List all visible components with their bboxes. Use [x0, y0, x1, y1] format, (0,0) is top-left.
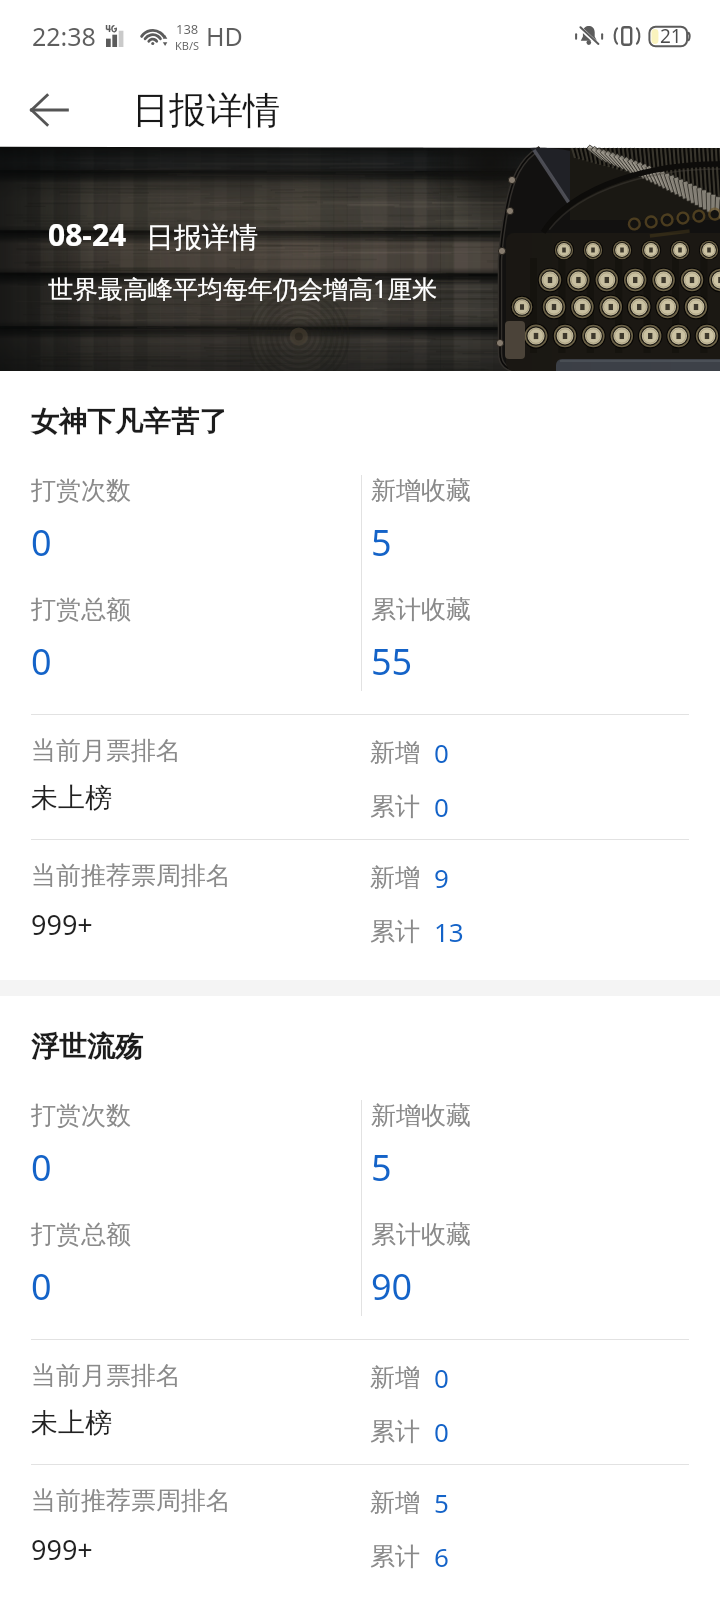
staticText: 新增收藏: [371, 1100, 471, 1131]
staticText: 世界最高峰平均每年仍会增高1厘米: [48, 271, 438, 305]
staticText: 累计: [370, 791, 420, 822]
staticText: 08-24: [48, 214, 127, 255]
staticText: 当前月票排名: [31, 1360, 181, 1391]
staticText: 日报详情: [146, 220, 258, 255]
staticText: 0: [31, 1143, 52, 1192]
staticText: 0: [434, 789, 449, 824]
staticText: 未上榜: [31, 1406, 112, 1440]
staticText: 0: [31, 518, 52, 567]
staticText: 999+: [31, 906, 93, 943]
button[interactable]: 当前推荐票周排名: [0, 1465, 720, 1589]
staticText: 6: [434, 1539, 449, 1574]
staticText: KB/S: [175, 38, 200, 53]
button[interactable]: 当前推荐票周排名: [0, 840, 720, 964]
staticText: 累计收藏: [371, 1219, 471, 1250]
staticText: 55: [371, 637, 413, 686]
staticText: 打赏次数: [31, 1100, 131, 1131]
staticText: 999+: [31, 1531, 93, 1568]
staticText: 0: [434, 735, 449, 770]
staticText: 新增: [370, 737, 420, 768]
staticText: 累计: [370, 1416, 420, 1447]
staticText: 当前推荐票周排名: [31, 1485, 231, 1516]
staticText: 90: [371, 1262, 413, 1311]
staticText: 日报详情: [132, 87, 280, 134]
staticText: 新增: [370, 1487, 420, 1518]
staticText: 当前推荐票周排名: [31, 860, 231, 891]
staticText: 当前月票排名: [31, 735, 181, 766]
staticText: 打赏总额: [31, 594, 131, 625]
staticText: 22:38: [32, 19, 96, 53]
staticText: 0: [31, 637, 52, 686]
staticText: 21: [660, 23, 682, 49]
staticText: 浮世流殇: [31, 1029, 143, 1064]
staticText: 女神下凡辛苦了: [31, 404, 227, 439]
staticText: 5: [371, 1143, 392, 1192]
staticText: HD: [206, 19, 243, 53]
staticText: 13: [434, 914, 464, 949]
button[interactable]: 当前月票排名: [0, 715, 720, 839]
button[interactable]: Back: [13, 74, 85, 146]
staticText: 打赏总额: [31, 1219, 131, 1250]
staticText: 累计收藏: [371, 594, 471, 625]
staticText: 5: [434, 1485, 449, 1520]
staticText: 累计: [370, 916, 420, 947]
staticText: 累计: [370, 1541, 420, 1572]
staticText: 0: [434, 1360, 449, 1395]
staticText: 138: [176, 20, 199, 38]
staticText: 新增: [370, 862, 420, 893]
button[interactable]: 当前月票排名: [0, 1340, 720, 1464]
staticText: 0: [31, 1262, 52, 1311]
staticText: 5: [371, 518, 392, 567]
staticText: 9: [434, 860, 449, 895]
staticText: 未上榜: [31, 781, 112, 815]
staticText: 打赏次数: [31, 475, 131, 506]
staticText: 0: [434, 1414, 449, 1449]
staticText: 新增: [370, 1362, 420, 1393]
staticText: 新增收藏: [371, 475, 471, 506]
